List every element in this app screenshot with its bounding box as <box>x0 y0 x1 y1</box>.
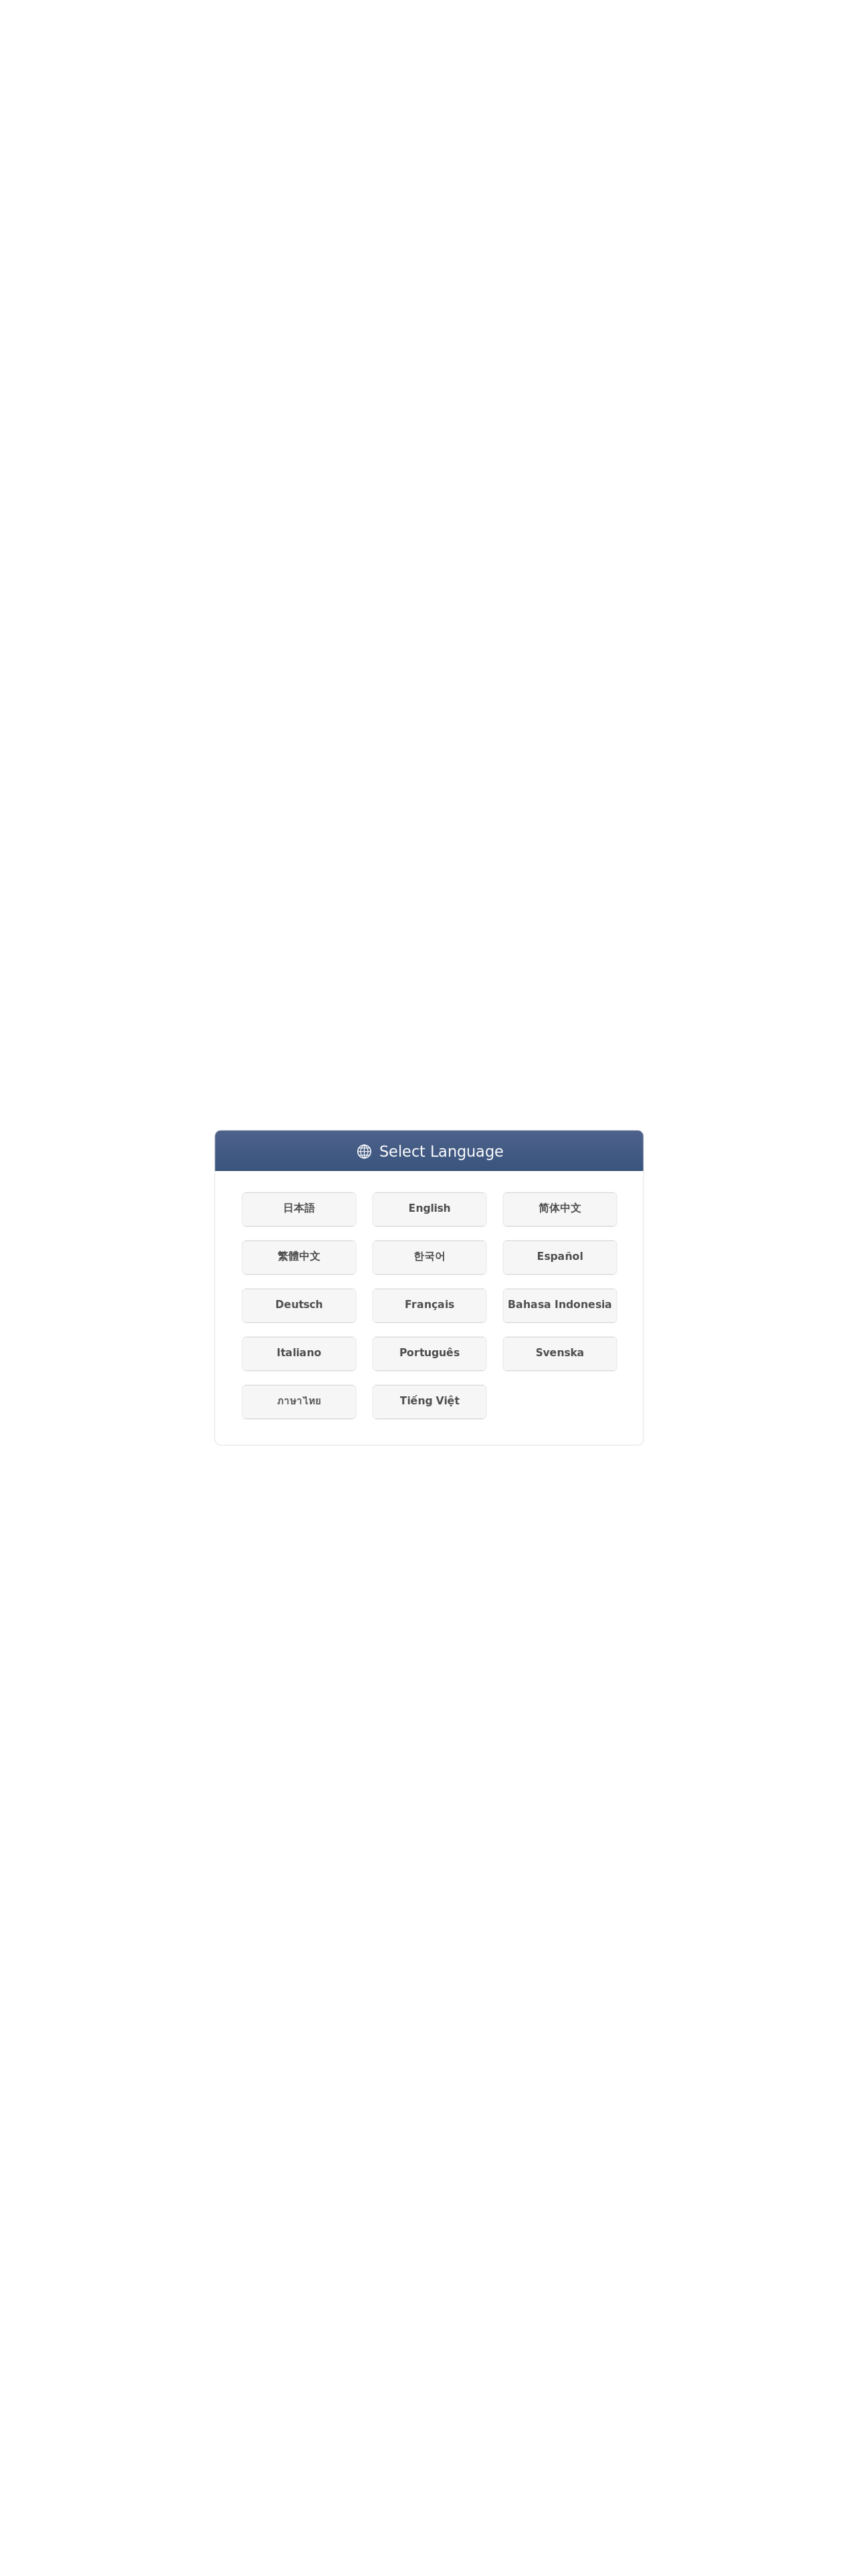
button[interactable]: Tiếng Việt <box>373 1385 486 1419</box>
button[interactable]: Español <box>503 1241 617 1275</box>
button[interactable]: Deutsch <box>242 1289 356 1323</box>
button[interactable]: 한국어 <box>373 1241 486 1275</box>
button[interactable]: Português <box>373 1337 486 1371</box>
button[interactable]: Bahasa Indonesia <box>503 1289 617 1323</box>
button[interactable]: English <box>373 1192 486 1226</box>
staticText: Svenska <box>536 1346 584 1359</box>
staticText: Français <box>405 1298 454 1310</box>
staticText: 日本語 <box>283 1202 315 1215</box>
button[interactable]: 简体中文 <box>503 1192 617 1226</box>
staticText: English <box>408 1202 451 1214</box>
staticText: Select Language <box>379 1143 504 1160</box>
staticText: Español <box>537 1250 583 1262</box>
staticText: Tiếng Việt <box>400 1395 459 1407</box>
staticText: ภาษาไทย <box>277 1392 321 1409</box>
staticText: Italiano <box>277 1346 321 1359</box>
staticText: Bahasa Indonesia <box>508 1298 612 1310</box>
staticText: 简体中文 <box>539 1202 581 1215</box>
staticText: Deutsch <box>275 1298 323 1310</box>
staticText: 한국어 <box>413 1250 446 1263</box>
staticText: Português <box>399 1346 460 1359</box>
button[interactable]: Svenska <box>503 1337 617 1371</box>
button[interactable]: 繁體中文 <box>242 1241 356 1275</box>
button[interactable]: ภาษาไทย <box>242 1385 356 1419</box>
button[interactable]: 日本語 <box>242 1192 356 1226</box>
staticText: 繁體中文 <box>278 1250 320 1263</box>
button[interactable]: Italiano <box>242 1337 356 1371</box>
button[interactable]: Français <box>373 1289 486 1323</box>
